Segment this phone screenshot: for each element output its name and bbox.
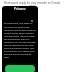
staticText: Removed reply to any emails in Gmail app [2, 1, 62, 8]
staticText: By continuing, you agree to our Terms of… [4, 22, 36, 58]
button[interactable]: Continue [5, 65, 35, 72]
staticText: Privacy [14, 6, 26, 10]
